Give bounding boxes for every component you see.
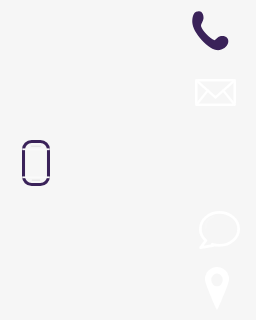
button[interactable]: Location — [205, 267, 229, 310]
button[interactable]: Mobile — [22, 140, 50, 186]
button[interactable]: Email — [195, 79, 236, 106]
button[interactable]: Call — [191, 9, 229, 51]
button[interactable]: Chat — [199, 211, 240, 249]
